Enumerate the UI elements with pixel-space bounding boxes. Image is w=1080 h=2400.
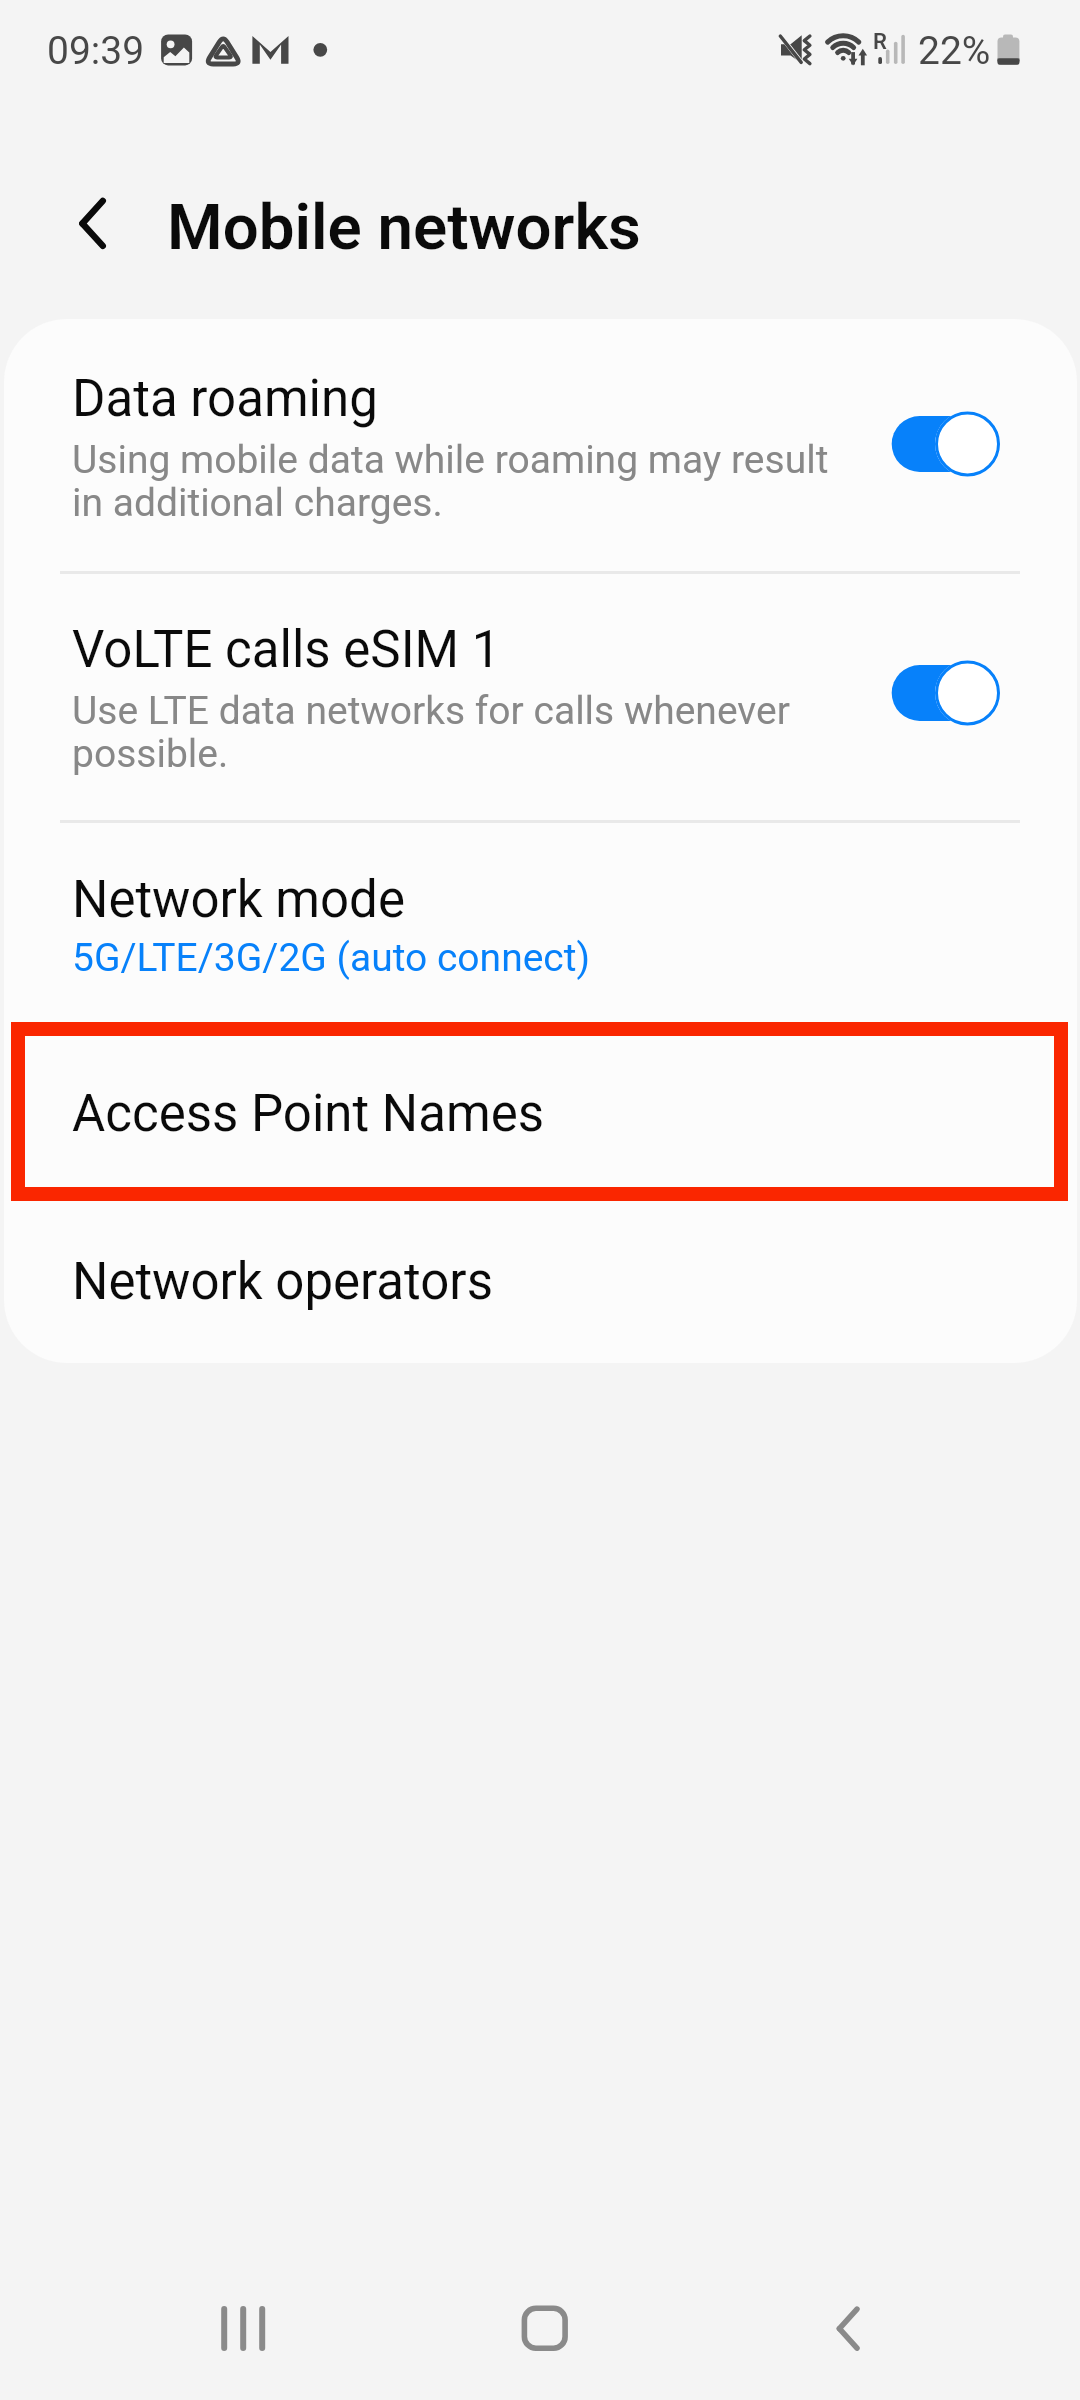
staticText: R xyxy=(873,29,887,55)
button[interactable]: Network operators xyxy=(4,1201,1077,1363)
staticText: Mobile networks xyxy=(167,190,641,265)
button[interactable]: Home xyxy=(485,2244,605,2400)
button[interactable]: Navigate up xyxy=(40,183,120,263)
button[interactable]: Data roaming, on xyxy=(888,409,1000,479)
button[interactable]: Access Point Names xyxy=(4,1022,1077,1201)
staticText: VoLTE calls eSIM 1 xyxy=(72,620,501,680)
button[interactable]: VoLTE calls eSIM 1, on xyxy=(888,658,1000,728)
staticText: 09:39 xyxy=(47,28,145,74)
button[interactable]: Data roaming xyxy=(4,319,1077,571)
staticText: 22% xyxy=(918,28,991,74)
staticText: Use LTE data networks for calls whenever… xyxy=(72,688,847,777)
button[interactable]: VoLTE calls eSIM 1 xyxy=(4,574,1077,820)
staticText: Network operators xyxy=(72,1252,493,1312)
staticText: Data roaming xyxy=(72,369,378,429)
staticText: Access Point Names xyxy=(72,1084,545,1144)
button[interactable]: Network mode xyxy=(4,823,1077,1022)
button[interactable]: Recent apps xyxy=(183,2244,303,2400)
staticText: 5G/LTE/3G/2G (auto connect) xyxy=(72,935,591,981)
staticText: Using mobile data while roaming may resu… xyxy=(72,437,847,526)
button[interactable]: Back xyxy=(788,2244,908,2400)
staticText: Network mode xyxy=(72,870,405,930)
